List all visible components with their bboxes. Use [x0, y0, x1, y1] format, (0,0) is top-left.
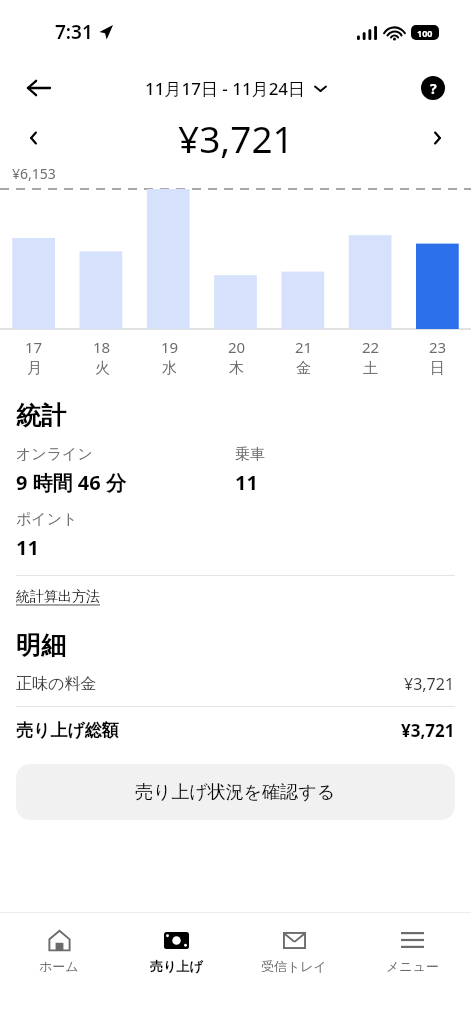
staticText: 木: [229, 359, 244, 378]
staticText: 20: [228, 337, 246, 357]
button[interactable]: 23: [404, 337, 471, 378]
button[interactable]: 17: [0, 337, 68, 378]
button[interactable]: 統計算出方法: [16, 588, 100, 606]
staticText: 売り上げ: [150, 958, 203, 974]
staticText: 22: [362, 337, 380, 357]
staticText: ?: [430, 79, 437, 98]
staticText: ホーム: [39, 958, 79, 974]
staticText: メニュー: [386, 958, 439, 974]
staticText: 23: [429, 337, 447, 357]
staticText: 18: [93, 337, 111, 357]
staticText: 火: [95, 359, 110, 378]
staticText: 11月17日 - 11月24日: [145, 77, 306, 100]
staticText: 7:31: [55, 19, 93, 45]
staticText: ¥3,721: [404, 673, 455, 695]
staticText: 9 時間 46 分: [16, 469, 126, 496]
button[interactable]: 売り上げ: [117, 913, 235, 1024]
staticText: 売り上げ状況を確認する: [135, 781, 336, 804]
button[interactable]: 売り上げ状況を確認する: [16, 764, 455, 820]
button[interactable]: Back: [18, 67, 60, 109]
button[interactable]: 受信トレイ: [235, 913, 353, 1024]
button[interactable]: Help: [413, 68, 453, 108]
button[interactable]: メニュー: [353, 913, 471, 1024]
button[interactable]: 19: [136, 337, 203, 378]
staticText: 月: [27, 359, 42, 378]
button[interactable]: 18: [68, 337, 136, 378]
staticText: 日: [430, 359, 445, 378]
staticText: 11: [16, 534, 39, 561]
button[interactable]: 11月17日 - 11月24日: [145, 77, 327, 100]
staticText: ¥3,721: [401, 719, 455, 742]
staticText: 明細: [16, 630, 66, 661]
staticText: オンライン: [16, 445, 93, 464]
button[interactable]: ホーム: [0, 913, 117, 1024]
staticText: 売り上げ総額: [16, 720, 401, 741]
staticText: ¥6,153: [12, 164, 56, 183]
staticText: 11: [235, 469, 258, 496]
staticText: ポイント: [16, 510, 78, 529]
button[interactable]: 21: [270, 337, 337, 378]
staticText: 土: [363, 359, 378, 378]
staticText: ¥3,721: [178, 113, 294, 163]
button[interactable]: Next week: [417, 118, 457, 158]
button[interactable]: Previous week: [14, 118, 54, 158]
staticText: 正味の料金: [16, 674, 404, 694]
staticText: 17: [25, 337, 43, 357]
staticText: 乗車: [235, 445, 265, 464]
staticText: 統計: [16, 400, 66, 431]
button[interactable]: 20: [203, 337, 270, 378]
staticText: 金: [296, 359, 311, 378]
staticText: 21: [295, 337, 313, 357]
staticText: 100: [417, 27, 433, 39]
staticText: 水: [162, 359, 177, 378]
button[interactable]: 22: [337, 337, 404, 378]
staticText: 19: [161, 337, 179, 357]
staticText: 受信トレイ: [261, 958, 327, 974]
